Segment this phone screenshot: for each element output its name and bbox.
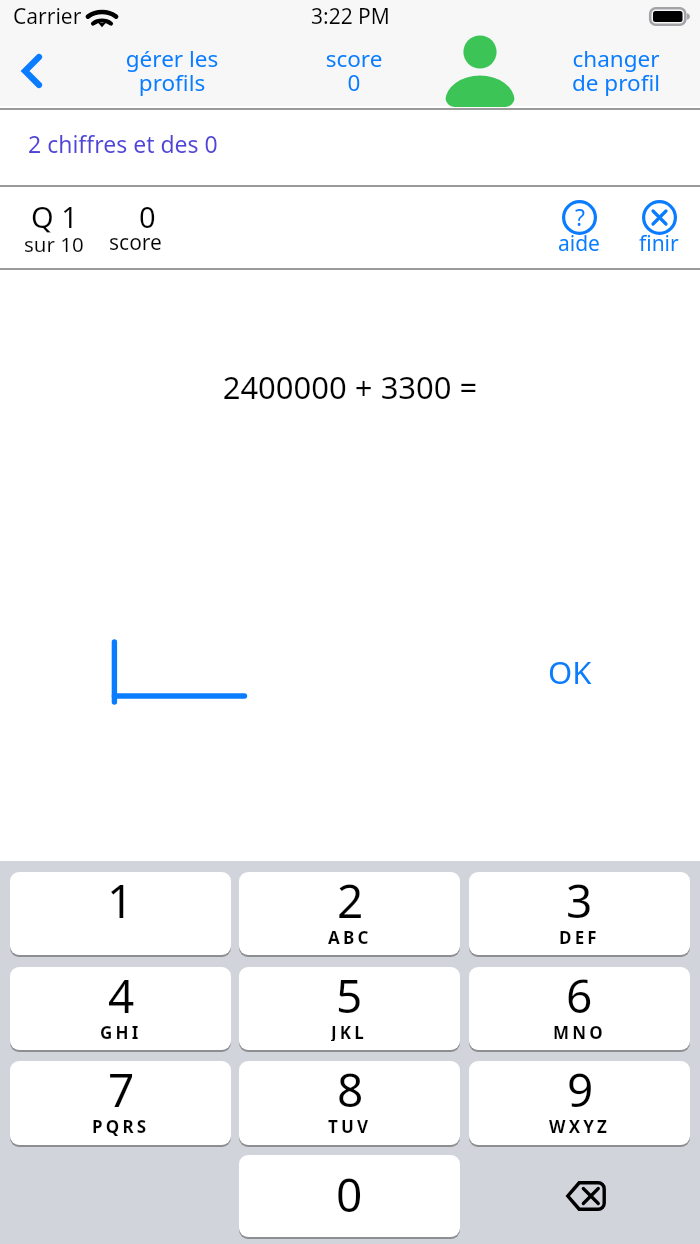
staticText: JKL [331,1021,368,1041]
staticText: 0 [139,197,156,236]
staticText: PQRS [92,1115,150,1136]
button[interactable]: 2 [239,872,460,955]
button[interactable]: changer de profil [536,44,696,98]
staticText: 2 [337,872,364,932]
staticText: GHI [100,1021,142,1041]
button[interactable]: 3 [469,872,690,955]
button[interactable]: 9 [469,1061,690,1145]
button[interactable]: 4 [10,967,231,1050]
button[interactable]: 8 [239,1061,460,1145]
staticText: TUV [328,1115,372,1136]
staticText: Carrier [13,2,82,31]
button[interactable]: 6 [469,967,690,1050]
button[interactable]: 5 [239,967,460,1050]
button[interactable]: gérer les profils [92,44,252,98]
staticText: 1 [107,872,134,932]
button[interactable]: Profile [438,35,522,105]
staticText: sur 10 [24,230,84,258]
button[interactable]: 0 [239,1155,460,1237]
staticText: OK [548,651,592,693]
staticText: gérer les profils [92,43,252,97]
staticText: 7 [108,1061,135,1121]
button[interactable]: Back [0,36,62,106]
button[interactable]: 0 [85,197,185,265]
button[interactable]: score 0 [294,44,414,98]
staticText: score 0 [294,43,414,97]
staticText: 3:22 PM [311,2,390,31]
staticText: Q 1 [31,197,78,236]
button[interactable]: Answer field [111,639,247,707]
button[interactable]: 7 [10,1061,231,1145]
button[interactable]: Backspace [469,1155,690,1237]
staticText: 8 [337,1061,364,1121]
staticText: MNO [553,1021,606,1041]
staticText: 0 [336,1163,363,1226]
staticText: 5 [336,967,363,1027]
staticText: 6 [566,967,593,1027]
button[interactable]: OK [548,651,592,693]
staticText: changer de profil [536,43,696,97]
staticText: DEF [559,926,600,946]
staticText: ? [575,201,585,232]
staticText: 2 chiffres et des 0 [28,128,218,159]
staticText: aide [558,229,600,258]
button[interactable]: ? [552,200,606,264]
button[interactable]: 1 [10,872,231,955]
staticText: finir [639,229,679,258]
button[interactable]: finir [632,200,686,264]
staticText: 3 [566,872,593,932]
staticText: 4 [108,967,135,1027]
staticText: score [109,228,162,257]
staticText: WXYZ [549,1115,611,1136]
staticText: 9 [567,1061,594,1121]
staticText: ABC [328,926,372,946]
button[interactable]: Q 1 [4,197,104,264]
staticText: 2400000 + 3300 = [0,366,700,408]
